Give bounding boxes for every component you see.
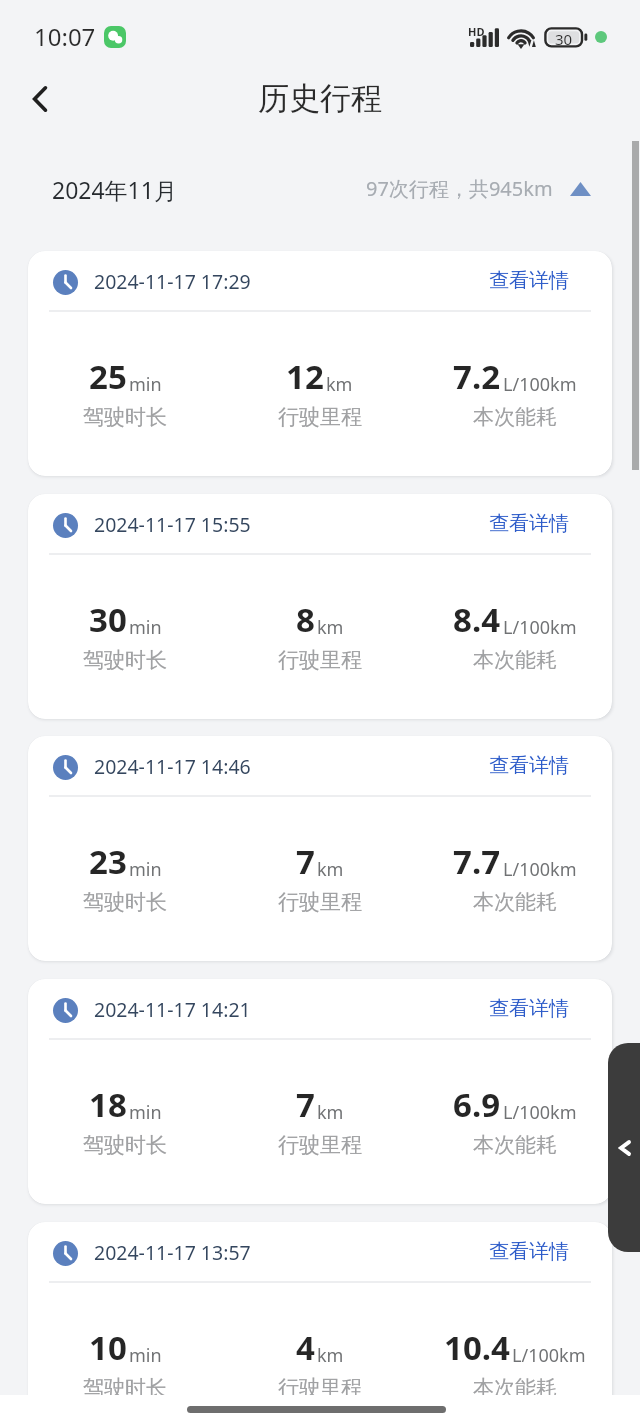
- staticText: 查看详情: [489, 268, 569, 293]
- staticText: 行驶里程: [278, 404, 362, 430]
- staticText: L/100km: [503, 1100, 577, 1125]
- staticText: 8.4: [453, 597, 501, 642]
- staticText: 本次能耗: [473, 1375, 557, 1401]
- staticText: 驾驶时长: [83, 889, 167, 915]
- staticText: 7: [296, 839, 315, 884]
- button[interactable]: 2024-11-17 13:57: [28, 1222, 612, 1423]
- staticText: min: [129, 857, 162, 882]
- staticText: 查看详情: [489, 996, 569, 1021]
- staticText: 7: [296, 1082, 315, 1127]
- staticText: 2024-11-17 14:46: [94, 753, 251, 780]
- staticText: 25: [89, 354, 127, 399]
- staticText: min: [129, 1343, 162, 1368]
- staticText: min: [129, 372, 162, 397]
- staticText: 行驶里程: [278, 889, 362, 915]
- staticText: 行驶里程: [278, 1132, 362, 1158]
- staticText: L/100km: [512, 1343, 586, 1368]
- staticText: 2024-11-17 15:55: [94, 511, 251, 538]
- staticText: 驾驶时长: [83, 1375, 167, 1401]
- button[interactable]: Expand side panel: [608, 1043, 640, 1252]
- staticText: 30: [555, 29, 573, 49]
- staticText: 查看详情: [489, 1239, 569, 1264]
- staticText: 12: [286, 354, 324, 399]
- staticText: 查看详情: [489, 753, 569, 778]
- staticText: L/100km: [503, 615, 577, 640]
- staticText: 7.2: [453, 354, 501, 399]
- staticText: 10: [89, 1325, 127, 1370]
- staticText: 查看详情: [489, 511, 569, 536]
- staticText: 本次能耗: [473, 647, 557, 673]
- staticText: 2024-11-17 17:29: [94, 268, 251, 295]
- staticText: L/100km: [503, 857, 577, 882]
- staticText: 行驶里程: [278, 647, 362, 673]
- staticText: min: [129, 615, 162, 640]
- staticText: km: [317, 1100, 344, 1125]
- staticText: 10:07: [34, 20, 96, 53]
- staticText: 2024-11-17 13:57: [94, 1239, 251, 1266]
- staticText: 本次能耗: [473, 889, 557, 915]
- staticText: km: [317, 857, 344, 882]
- staticText: 驾驶时长: [83, 1132, 167, 1158]
- staticText: 10.4: [444, 1325, 510, 1370]
- staticText: 18: [89, 1082, 127, 1127]
- staticText: 驾驶时长: [83, 647, 167, 673]
- staticText: 2024-11-17 14:21: [94, 996, 251, 1023]
- staticText: 行驶里程: [278, 1375, 362, 1401]
- staticText: HD: [468, 24, 485, 39]
- button[interactable]: 2024-11-17 14:46: [28, 736, 612, 961]
- button[interactable]: 2024-11-17 15:55: [28, 494, 612, 719]
- button[interactable]: 2024-11-17 17:29: [28, 251, 612, 476]
- staticText: km: [326, 372, 353, 397]
- staticText: L/100km: [503, 372, 577, 397]
- staticText: 2024年11月: [52, 174, 177, 205]
- staticText: 30: [89, 597, 127, 642]
- staticText: 4: [296, 1325, 315, 1370]
- staticText: 23: [89, 839, 127, 884]
- staticText: km: [317, 615, 344, 640]
- staticText: 7.7: [453, 839, 501, 884]
- button[interactable]: 2024-11-17 14:21: [28, 979, 612, 1204]
- staticText: 6.9: [453, 1082, 501, 1127]
- staticText: 本次能耗: [473, 1132, 557, 1158]
- staticText: km: [317, 1343, 344, 1368]
- staticText: 本次能耗: [473, 404, 557, 430]
- staticText: 8: [296, 597, 315, 642]
- staticText: min: [129, 1100, 162, 1125]
- button[interactable]: 97次行程，共945km: [366, 175, 574, 202]
- staticText: 驾驶时长: [83, 404, 167, 430]
- staticText: 历史行程: [258, 79, 382, 118]
- button[interactable]: Back: [16, 74, 66, 124]
- staticText: 97次行程，共945km: [366, 175, 553, 202]
